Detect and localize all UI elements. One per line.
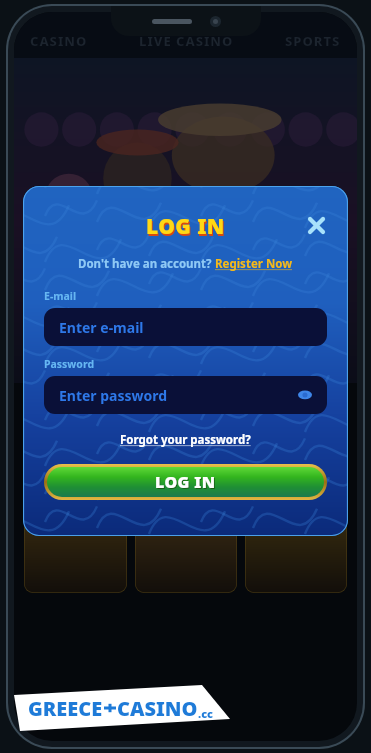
staticText: GREECE (28, 695, 103, 722)
button[interactable]: Close (301, 212, 331, 238)
button[interactable]: CASINO (26, 24, 92, 58)
button[interactable]: Enter e-mail (44, 308, 327, 346)
staticText: Enter e-mail (59, 318, 144, 337)
button[interactable]: Forgot your password? (116, 428, 255, 452)
button[interactable]: LOG IN (47, 467, 324, 497)
button[interactable]: LIVE CASINO (135, 24, 238, 58)
staticText: Enter password (59, 386, 168, 405)
button[interactable]: Show password (295, 385, 315, 405)
staticText: LOG IN (155, 471, 216, 493)
staticText: LOG IN (156, 472, 217, 494)
button[interactable]: TOP (30, 392, 66, 415)
button[interactable] (135, 423, 237, 593)
button[interactable] (245, 423, 347, 593)
button[interactable]: SPORTS (281, 24, 345, 58)
staticText: Don't have an account? (78, 256, 215, 272)
staticText: LOG IN (147, 214, 226, 240)
button[interactable]: SEE ALL (287, 394, 341, 412)
staticText: LOG IN (146, 212, 225, 238)
staticText: .cc (198, 706, 214, 721)
staticText: Password (44, 357, 95, 371)
staticText: E-mail (44, 289, 77, 303)
staticText: CASINO (117, 695, 198, 722)
button[interactable]: Enter password (44, 376, 327, 414)
button[interactable]: Register Now (215, 256, 293, 272)
button[interactable] (24, 423, 127, 593)
